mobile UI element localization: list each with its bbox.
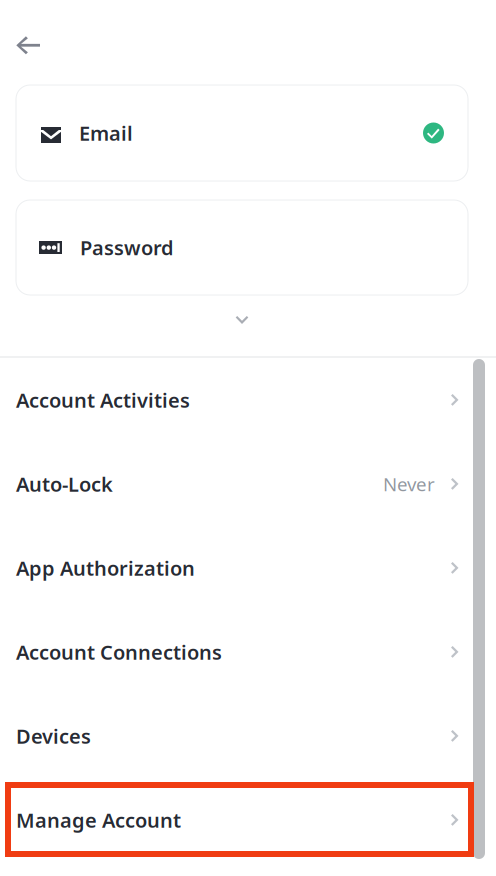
staticText: Password <box>80 234 174 261</box>
button[interactable]: Devices <box>0 694 496 778</box>
button[interactable]: Back <box>0 0 57 70</box>
staticText: Email <box>79 120 133 146</box>
button[interactable]: Show more <box>228 309 255 331</box>
staticText: App Authorization <box>16 555 195 581</box>
staticText: Account Connections <box>16 639 222 665</box>
staticText: Manage Account <box>16 807 181 833</box>
staticText: Never <box>383 472 435 496</box>
staticText: Devices <box>16 723 91 749</box>
staticText: Account Activities <box>16 387 190 413</box>
button[interactable]: Auto-Lock <box>0 442 496 526</box>
staticText: Auto-Lock <box>16 471 113 497</box>
button[interactable]: App Authorization <box>0 526 496 610</box>
button[interactable]: Email <box>16 85 468 181</box>
button[interactable]: Account Activities <box>0 358 496 442</box>
button[interactable]: Account Connections <box>0 610 496 694</box>
button[interactable]: Password <box>16 200 468 295</box>
button[interactable]: Manage Account <box>0 778 496 862</box>
